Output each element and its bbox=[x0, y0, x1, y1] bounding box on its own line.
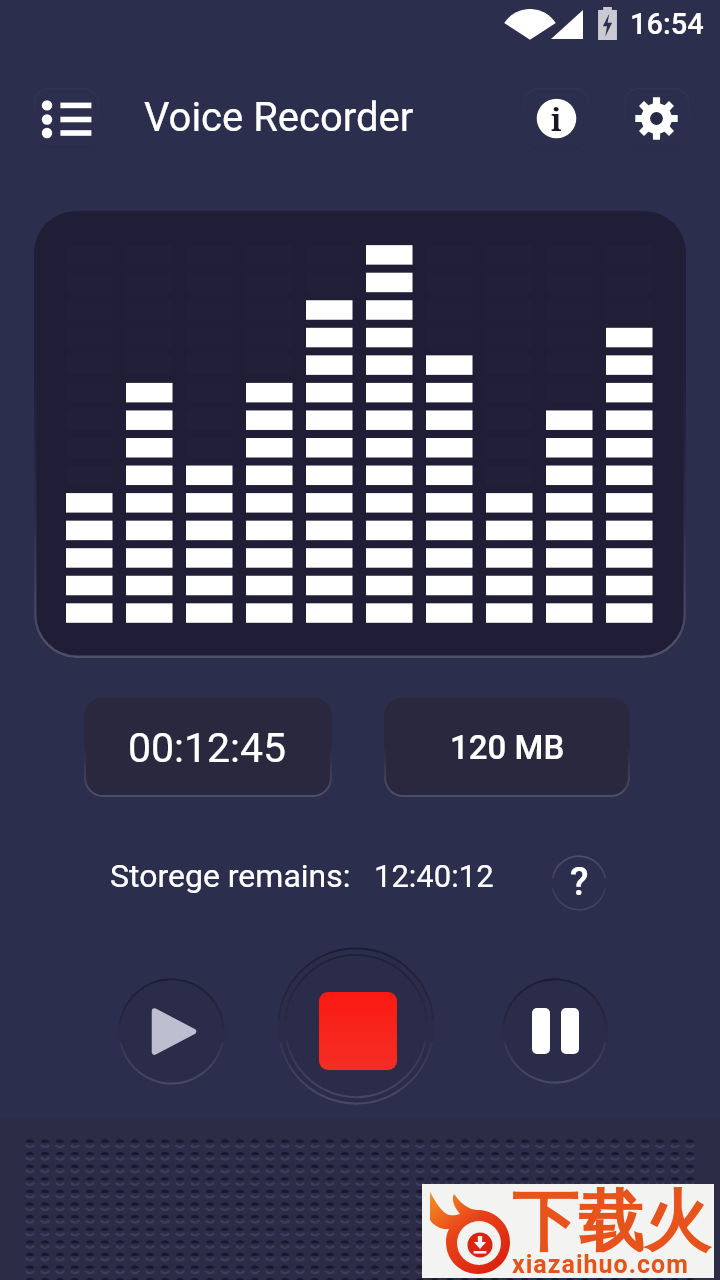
button[interactable]: Pause bbox=[502, 978, 608, 1084]
button[interactable]: Record bbox=[277, 947, 435, 1105]
staticText: 12:40:12 bbox=[374, 858, 494, 894]
button[interactable]: 120 MB bbox=[384, 698, 630, 797]
button[interactable]: Settings bbox=[624, 88, 689, 149]
staticText: 16:54 bbox=[630, 7, 704, 41]
button[interactable]: Play bbox=[118, 978, 225, 1085]
button[interactable]: 00:12:45 bbox=[84, 698, 332, 797]
button[interactable]: Recordings list bbox=[34, 88, 99, 148]
staticText: 00:12:45 bbox=[128, 724, 287, 772]
staticText: 下载火 bbox=[512, 1180, 710, 1263]
button[interactable]: Info bbox=[524, 88, 589, 149]
staticText: 120 MB bbox=[450, 728, 565, 767]
staticText: xiazaihuo.com bbox=[512, 1250, 689, 1279]
staticText: ? bbox=[570, 860, 589, 905]
button[interactable]: Help bbox=[551, 855, 607, 911]
staticText: Voice Recorder bbox=[144, 94, 414, 141]
staticText: i bbox=[551, 99, 562, 140]
staticText: Storege remains: bbox=[110, 857, 351, 895]
